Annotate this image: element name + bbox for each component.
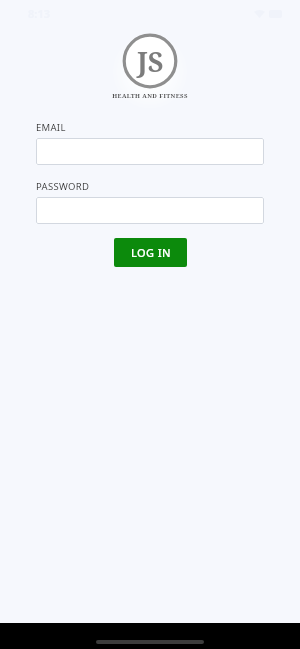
button[interactable]: LOG IN bbox=[114, 238, 187, 267]
button[interactable] bbox=[36, 197, 264, 224]
other: Home gesture handle bbox=[96, 640, 204, 644]
button[interactable] bbox=[36, 138, 264, 165]
staticText: PASSWORD bbox=[36, 180, 90, 193]
staticText: JS bbox=[137, 43, 164, 80]
staticText: EMAIL bbox=[36, 121, 66, 134]
staticText: LOG IN bbox=[131, 245, 171, 260]
staticText: HEALTH AND FITNESS bbox=[112, 92, 188, 100]
